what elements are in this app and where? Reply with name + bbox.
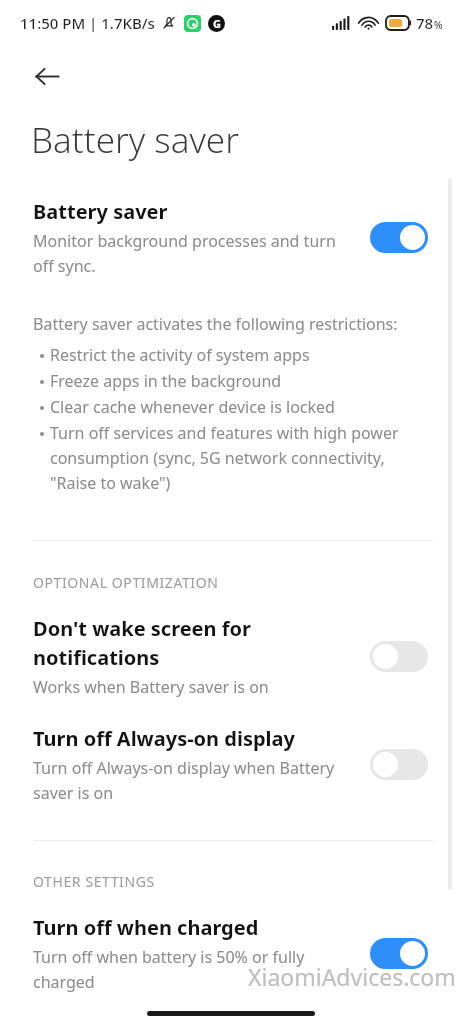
button[interactable]: Battery saver — [0, 198, 461, 277]
staticText: % — [434, 18, 443, 32]
staticText: Battery saver — [33, 198, 168, 225]
staticText: Turn off when charged — [33, 914, 259, 941]
staticText: OTHER SETTINGS — [33, 872, 155, 891]
button[interactable]: Off — [370, 641, 428, 672]
staticText: consumption (sync, 5G network connectivi… — [50, 447, 385, 469]
staticText: Don't wake screen for — [33, 615, 251, 642]
staticText: Clear cache whenever device is locked — [50, 396, 335, 418]
staticText: charged — [33, 971, 95, 993]
staticText: notifications — [33, 644, 160, 671]
staticText: Turn off Always-on display — [33, 725, 295, 752]
staticText: Restrict the activity of system apps — [50, 344, 310, 366]
button[interactable]: Don't wake screen for — [0, 615, 461, 698]
button[interactable]: On — [370, 222, 428, 253]
staticText: Battery saver activates the following re… — [33, 313, 398, 335]
staticText: G — [213, 16, 221, 31]
staticText: Freeze apps in the background — [50, 370, 282, 392]
staticText: Turn off when battery is 50% or fully — [33, 946, 305, 968]
button[interactable]: Turn off Always-on display — [0, 725, 461, 804]
staticText: 78 — [416, 13, 434, 33]
staticText: Turn off Always-on display when Battery — [33, 757, 335, 779]
staticText: saver is on — [33, 782, 114, 804]
button[interactable]: On — [370, 938, 428, 969]
staticText: Monitor background processes and turn — [33, 230, 336, 252]
staticText: "Raise to wake") — [50, 472, 171, 494]
button[interactable]: Turn off when charged — [0, 914, 461, 993]
staticText: 11:50 PM | 1.7KB/s — [20, 13, 155, 33]
button[interactable]: Off — [370, 749, 428, 780]
staticText: Battery saver — [31, 116, 239, 164]
staticText: XiaomiAdvices.com — [248, 961, 456, 992]
button[interactable]: Back — [21, 50, 73, 102]
staticText: Turn off services and features with high… — [50, 422, 399, 444]
staticText: OPTIONAL OPTIMIZATION — [33, 573, 219, 592]
staticText: off sync. — [33, 255, 96, 277]
staticText: Works when Battery saver is on — [33, 676, 269, 698]
